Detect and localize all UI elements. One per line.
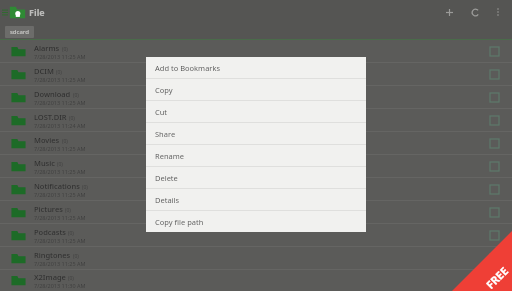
staticText: 7/28/2013 11:25 AM <box>34 145 86 152</box>
staticText: Music <box>34 158 55 168</box>
button[interactable]: Add to Bookmarks <box>146 57 366 78</box>
button[interactable]: Select LOST.DIR <box>476 109 512 131</box>
staticText: Add to Bookmarks <box>155 63 221 73</box>
staticText: Ringtones <box>34 250 71 260</box>
button[interactable]: LOST.DIR <box>0 109 512 131</box>
button[interactable]: Select Ringtones <box>476 247 512 269</box>
staticText: Pictures <box>34 204 63 214</box>
button[interactable]: Refresh <box>462 0 488 24</box>
button[interactable]: Pictures <box>0 201 512 223</box>
staticText: 7/28/2013 11:25 AM <box>34 214 86 221</box>
staticText: Cut <box>155 107 168 117</box>
button[interactable]: Copy file path <box>146 211 366 232</box>
staticText: Movies <box>34 135 60 145</box>
button[interactable]: Music <box>0 155 512 177</box>
staticText: 7/28/2013 11:25 AM <box>34 168 86 175</box>
staticText: File <box>29 6 45 18</box>
button[interactable]: More options <box>488 0 508 24</box>
staticText: (0) <box>65 207 71 214</box>
staticText: 7/28/2013 11:25 AM <box>34 53 86 60</box>
button[interactable]: Select X2Image <box>476 270 512 291</box>
staticText: Notifications <box>34 181 80 191</box>
button[interactable]: Cut <box>146 101 366 122</box>
staticText: (0) <box>82 184 88 191</box>
button[interactable]: Download <box>0 86 512 108</box>
button[interactable]: Movies <box>0 132 512 154</box>
staticText: Share <box>155 129 176 139</box>
staticText: 7/28/2013 11:25 AM <box>34 191 86 198</box>
staticText: (0) <box>62 138 68 145</box>
staticText: DCIM <box>34 66 54 76</box>
staticText: (0) <box>68 230 74 237</box>
staticText: 7/28/2013 11:24 AM <box>34 122 86 129</box>
staticText: 7/28/2013 11:25 AM <box>34 260 86 267</box>
button[interactable]: sdcard <box>5 26 34 38</box>
button[interactable]: Podcasts <box>0 224 512 246</box>
button[interactable]: X2Image <box>0 270 512 291</box>
button[interactable]: Select Notifications <box>476 178 512 200</box>
staticText: FREE <box>482 263 511 291</box>
staticText: LOST.DIR <box>34 112 67 122</box>
button[interactable]: Select DCIM <box>476 63 512 85</box>
button[interactable]: Open navigation <box>0 0 9 24</box>
button[interactable]: Notifications <box>0 178 512 200</box>
button[interactable]: DCIM <box>0 63 512 85</box>
button[interactable]: Rename <box>146 145 366 166</box>
staticText: Copy file path <box>155 217 204 227</box>
button[interactable]: Select Alarms <box>476 40 512 62</box>
button[interactable]: Alarms <box>0 40 512 62</box>
staticText: (0) <box>56 69 62 76</box>
staticText: (0) <box>68 275 74 282</box>
button[interactable]: Select Pictures <box>476 201 512 223</box>
staticText: 7/28/2013 11:25 AM <box>34 76 86 83</box>
button[interactable]: Select Music <box>476 155 512 177</box>
staticText: Rename <box>155 151 184 161</box>
staticText: Details <box>155 195 180 205</box>
staticText: 7/28/2013 11:30 AM <box>34 282 86 289</box>
button[interactable]: Select Download <box>476 86 512 108</box>
staticText: Podcasts <box>34 227 66 237</box>
staticText: (0) <box>73 92 79 99</box>
staticText: 7/28/2013 11:25 AM <box>34 99 86 106</box>
staticText: (0) <box>62 46 68 53</box>
button[interactable]: Copy <box>146 79 366 100</box>
staticText: Delete <box>155 173 178 183</box>
button[interactable]: Add <box>436 0 462 24</box>
staticText: (0) <box>57 161 63 168</box>
button[interactable]: Select Podcasts <box>476 224 512 246</box>
staticText: X2Image <box>34 272 66 282</box>
staticText: (0) <box>69 115 75 122</box>
staticText: sdcard <box>10 28 29 36</box>
button[interactable]: Details <box>146 189 366 210</box>
staticText: 7/28/2013 11:25 AM <box>34 237 86 244</box>
staticText: Download <box>34 89 71 99</box>
button[interactable]: Ringtones <box>0 247 512 269</box>
button[interactable]: Delete <box>146 167 366 188</box>
staticText: Alarms <box>34 43 60 53</box>
staticText: (0) <box>73 253 79 260</box>
button[interactable]: Share <box>146 123 366 144</box>
button[interactable]: Select Movies <box>476 132 512 154</box>
staticText: Copy <box>155 85 173 95</box>
